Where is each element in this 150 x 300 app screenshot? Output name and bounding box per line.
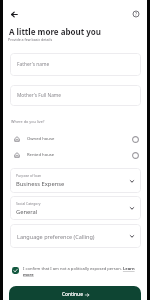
button[interactable]: Purpose of loan (10, 168, 141, 193)
staticText: General (16, 208, 38, 216)
staticText: Provide a few basic details (8, 37, 53, 42)
staticText: Father's name (17, 61, 50, 68)
staticText: A little more about you (9, 26, 102, 37)
button[interactable]: Rented house (13, 148, 140, 162)
staticText: Continue (62, 291, 83, 298)
staticText: Mother's Full Name (17, 92, 62, 99)
staticText: Purpose of loan (16, 173, 42, 178)
staticText: Rented house (27, 152, 55, 158)
button[interactable]: Father's name (10, 53, 141, 76)
button[interactable]: Continue (9, 286, 141, 300)
staticText: Business Expense (16, 180, 65, 188)
button[interactable]: I confirm that I am not a politically ex… (12, 267, 19, 274)
button[interactable]: Mother's Full Name (10, 85, 141, 106)
button[interactable]: Owned house (13, 132, 140, 146)
staticText: Language preference (Calling) (17, 233, 95, 240)
staticText: Social Category (16, 201, 41, 206)
staticText: Owned house (27, 136, 55, 142)
staticText: Where do you live? (11, 119, 45, 124)
button[interactable]: Back (6, 7, 21, 22)
button[interactable]: Social Category (10, 196, 141, 220)
staticText: I confirm that I am not a politically ex… (23, 266, 139, 277)
button[interactable]: Help (129, 7, 143, 21)
staticText: ? (135, 11, 138, 17)
button[interactable]: Language preference (Calling) (10, 224, 141, 248)
